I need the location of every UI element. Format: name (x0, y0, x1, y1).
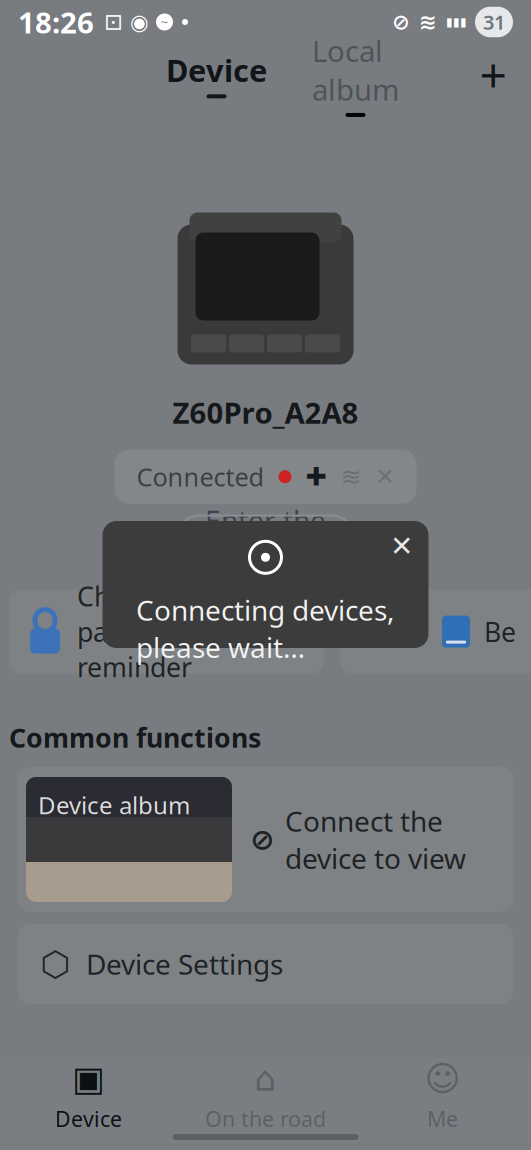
button[interactable]: Be (340, 590, 531, 674)
staticText: ⊘ (250, 823, 275, 856)
staticText: Local album (312, 31, 399, 109)
staticText: Change password reminder (77, 578, 197, 685)
staticText: ⬡ (40, 944, 70, 984)
staticText: Common functions (9, 720, 261, 755)
button[interactable]: Local album (312, 31, 399, 117)
button[interactable]: Device album (18, 767, 513, 912)
staticText: ⊘ (392, 10, 410, 34)
button[interactable]: Enter the recorder (176, 516, 354, 562)
staticText: Me (427, 1104, 458, 1133)
staticText: ☺ (424, 1059, 460, 1098)
staticText: Connected (136, 460, 264, 494)
staticText: Connecting devices, please wait… (136, 591, 395, 666)
button[interactable]: ☺ (354, 1058, 531, 1134)
staticText: ▣ (72, 1059, 105, 1098)
staticText: ⊡ (104, 9, 123, 35)
button[interactable]: ⌂ (177, 1058, 354, 1134)
staticText: ▮▮▮ (446, 15, 467, 29)
staticText: ✕ (390, 530, 413, 562)
button[interactable]: Change password reminder (9, 590, 324, 674)
staticText: ⌂ (254, 1059, 276, 1098)
staticText: Device (166, 50, 267, 90)
staticText: ≋ (419, 10, 437, 34)
button[interactable]: Add device (471, 52, 515, 96)
staticText: Be (484, 614, 516, 649)
staticText: Connect the device to view (285, 802, 466, 877)
staticText: ✕ (296, 599, 311, 618)
staticText: ~ (160, 13, 168, 31)
staticText: ✚ (305, 462, 326, 491)
staticText: ◉ (130, 10, 149, 34)
staticText: + (479, 42, 506, 106)
button[interactable]: ▣ (0, 1058, 177, 1134)
staticText: Device album (38, 789, 190, 821)
staticText: Enter the recorder (205, 501, 326, 576)
staticText: ✕ (375, 464, 394, 490)
button[interactable]: Device (166, 50, 267, 98)
button[interactable]: ⬡ (18, 924, 513, 1004)
staticText: ≋ (340, 462, 361, 491)
staticText: Device Settings (86, 945, 283, 983)
staticText: Z60Pro_A2A8 (172, 393, 358, 432)
button[interactable]: Close (384, 529, 418, 563)
staticText: On the road (205, 1104, 326, 1133)
staticText: 31 (483, 9, 505, 35)
staticText: Device (55, 1104, 122, 1133)
staticText: 18:26 (18, 2, 94, 41)
